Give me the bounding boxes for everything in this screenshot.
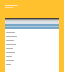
- button[interactable]: [6, 58, 59, 62]
- button[interactable]: [6, 62, 59, 66]
- button[interactable]: [6, 34, 59, 38]
- button[interactable]: [6, 50, 59, 54]
- button[interactable]: [6, 46, 59, 50]
- button[interactable]: [5, 5, 18, 8]
- button[interactable]: [6, 42, 59, 46]
- button[interactable]: [6, 30, 59, 34]
- button[interactable]: [6, 38, 59, 42]
- button[interactable]: [6, 54, 59, 58]
